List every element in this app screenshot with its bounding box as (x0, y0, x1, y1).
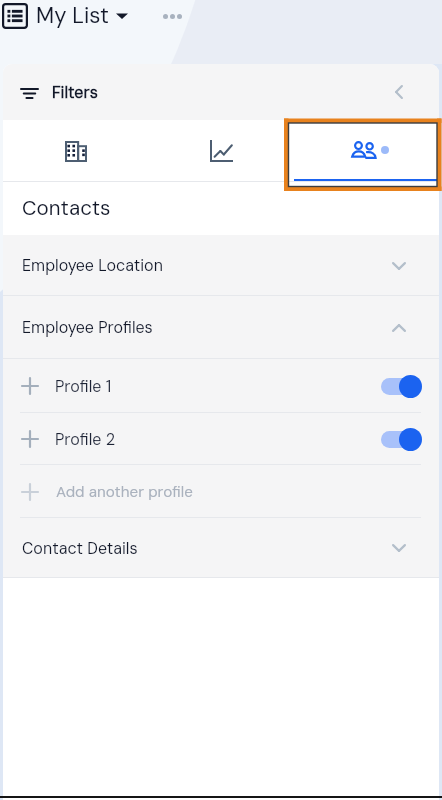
staticText: Employee Location (22, 255, 163, 276)
button[interactable]: Contact Details (3, 518, 439, 578)
button[interactable]: Contacts (294, 120, 439, 182)
button[interactable]: Toggle (381, 428, 422, 451)
button[interactable]: My List (28, 1, 132, 30)
button[interactable]: Profile 1 (3, 359, 439, 413)
button[interactable]: Analytics (149, 120, 294, 182)
button[interactable]: Organizations (3, 120, 149, 182)
button[interactable]: Profile 2 (3, 413, 439, 465)
button[interactable]: Employee Profiles (3, 296, 439, 359)
staticText: Contacts (22, 195, 111, 222)
staticText: Filters (52, 82, 98, 103)
button[interactable]: Add another profile (3, 465, 439, 518)
staticText: Contact Details (22, 538, 138, 559)
button[interactable]: Filters (3, 82, 108, 103)
staticText: Add another profile (56, 482, 193, 502)
button[interactable]: Employee Location (3, 235, 439, 296)
staticText: Employee Profiles (22, 317, 153, 338)
button[interactable]: Collapse (377, 70, 421, 114)
staticText: Profile 1 (55, 376, 112, 397)
button[interactable]: List (2, 3, 28, 29)
staticText: My List (36, 1, 109, 30)
button[interactable]: Toggle (381, 375, 422, 398)
staticText: Profile 2 (55, 429, 116, 450)
button[interactable]: More options (160, 4, 185, 28)
